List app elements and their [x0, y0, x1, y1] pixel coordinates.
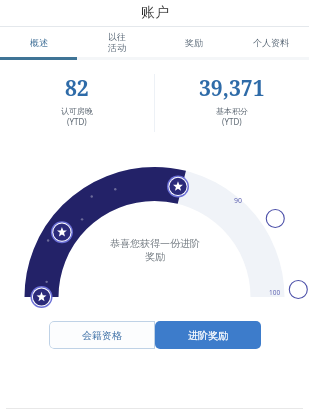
staticText: (YTD)	[67, 116, 87, 127]
staticText: 39,371	[199, 74, 265, 103]
staticText: 90	[234, 196, 243, 206]
staticText: 以往	[108, 31, 126, 42]
staticText: 基本积分	[216, 106, 248, 116]
staticText: 奖励	[185, 37, 203, 48]
button[interactable]: 以往	[78, 27, 155, 57]
staticText: (YTD)	[222, 116, 242, 127]
button[interactable]: 概述	[0, 27, 78, 57]
staticText: 82	[65, 74, 89, 103]
button[interactable]: 会籍资格	[49, 321, 155, 349]
staticText: 账户	[141, 4, 169, 22]
staticText: 会籍资格	[82, 329, 122, 342]
staticText: 100	[269, 288, 281, 297]
staticText: 个人资料	[253, 37, 289, 48]
button[interactable]: 奖励	[155, 27, 232, 57]
staticText: 认可房晚	[61, 106, 93, 116]
button[interactable]: 个人资料	[232, 27, 309, 57]
staticText: 恭喜您获得一份进阶 奖励	[110, 237, 200, 263]
button[interactable]: 进阶奖励	[155, 321, 261, 349]
staticText: 进阶奖励	[188, 329, 228, 342]
staticText: 概述	[30, 37, 48, 48]
staticText: 活动	[108, 42, 126, 53]
